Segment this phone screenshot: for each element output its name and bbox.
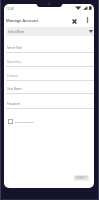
staticText: Show Password	[15, 120, 34, 123]
staticText: Manage Account	[6, 18, 39, 23]
staticText: Protocol	[7, 74, 18, 78]
staticText: 12:30	[6, 7, 15, 11]
staticText: Password	[7, 102, 20, 106]
button[interactable]: CONNECT	[74, 175, 89, 181]
staticText: Select Mode	[8, 30, 25, 34]
staticText: User Name	[7, 87, 22, 91]
staticText: CONNECT	[75, 176, 88, 180]
staticText: Server Path	[7, 46, 23, 50]
button[interactable]: Clear	[68, 15, 80, 27]
button[interactable]: Select Mode	[6, 27, 94, 36]
staticText: Repository	[7, 60, 22, 64]
button[interactable]: Show Password	[6, 116, 56, 127]
button[interactable]: More options	[81, 14, 93, 26]
